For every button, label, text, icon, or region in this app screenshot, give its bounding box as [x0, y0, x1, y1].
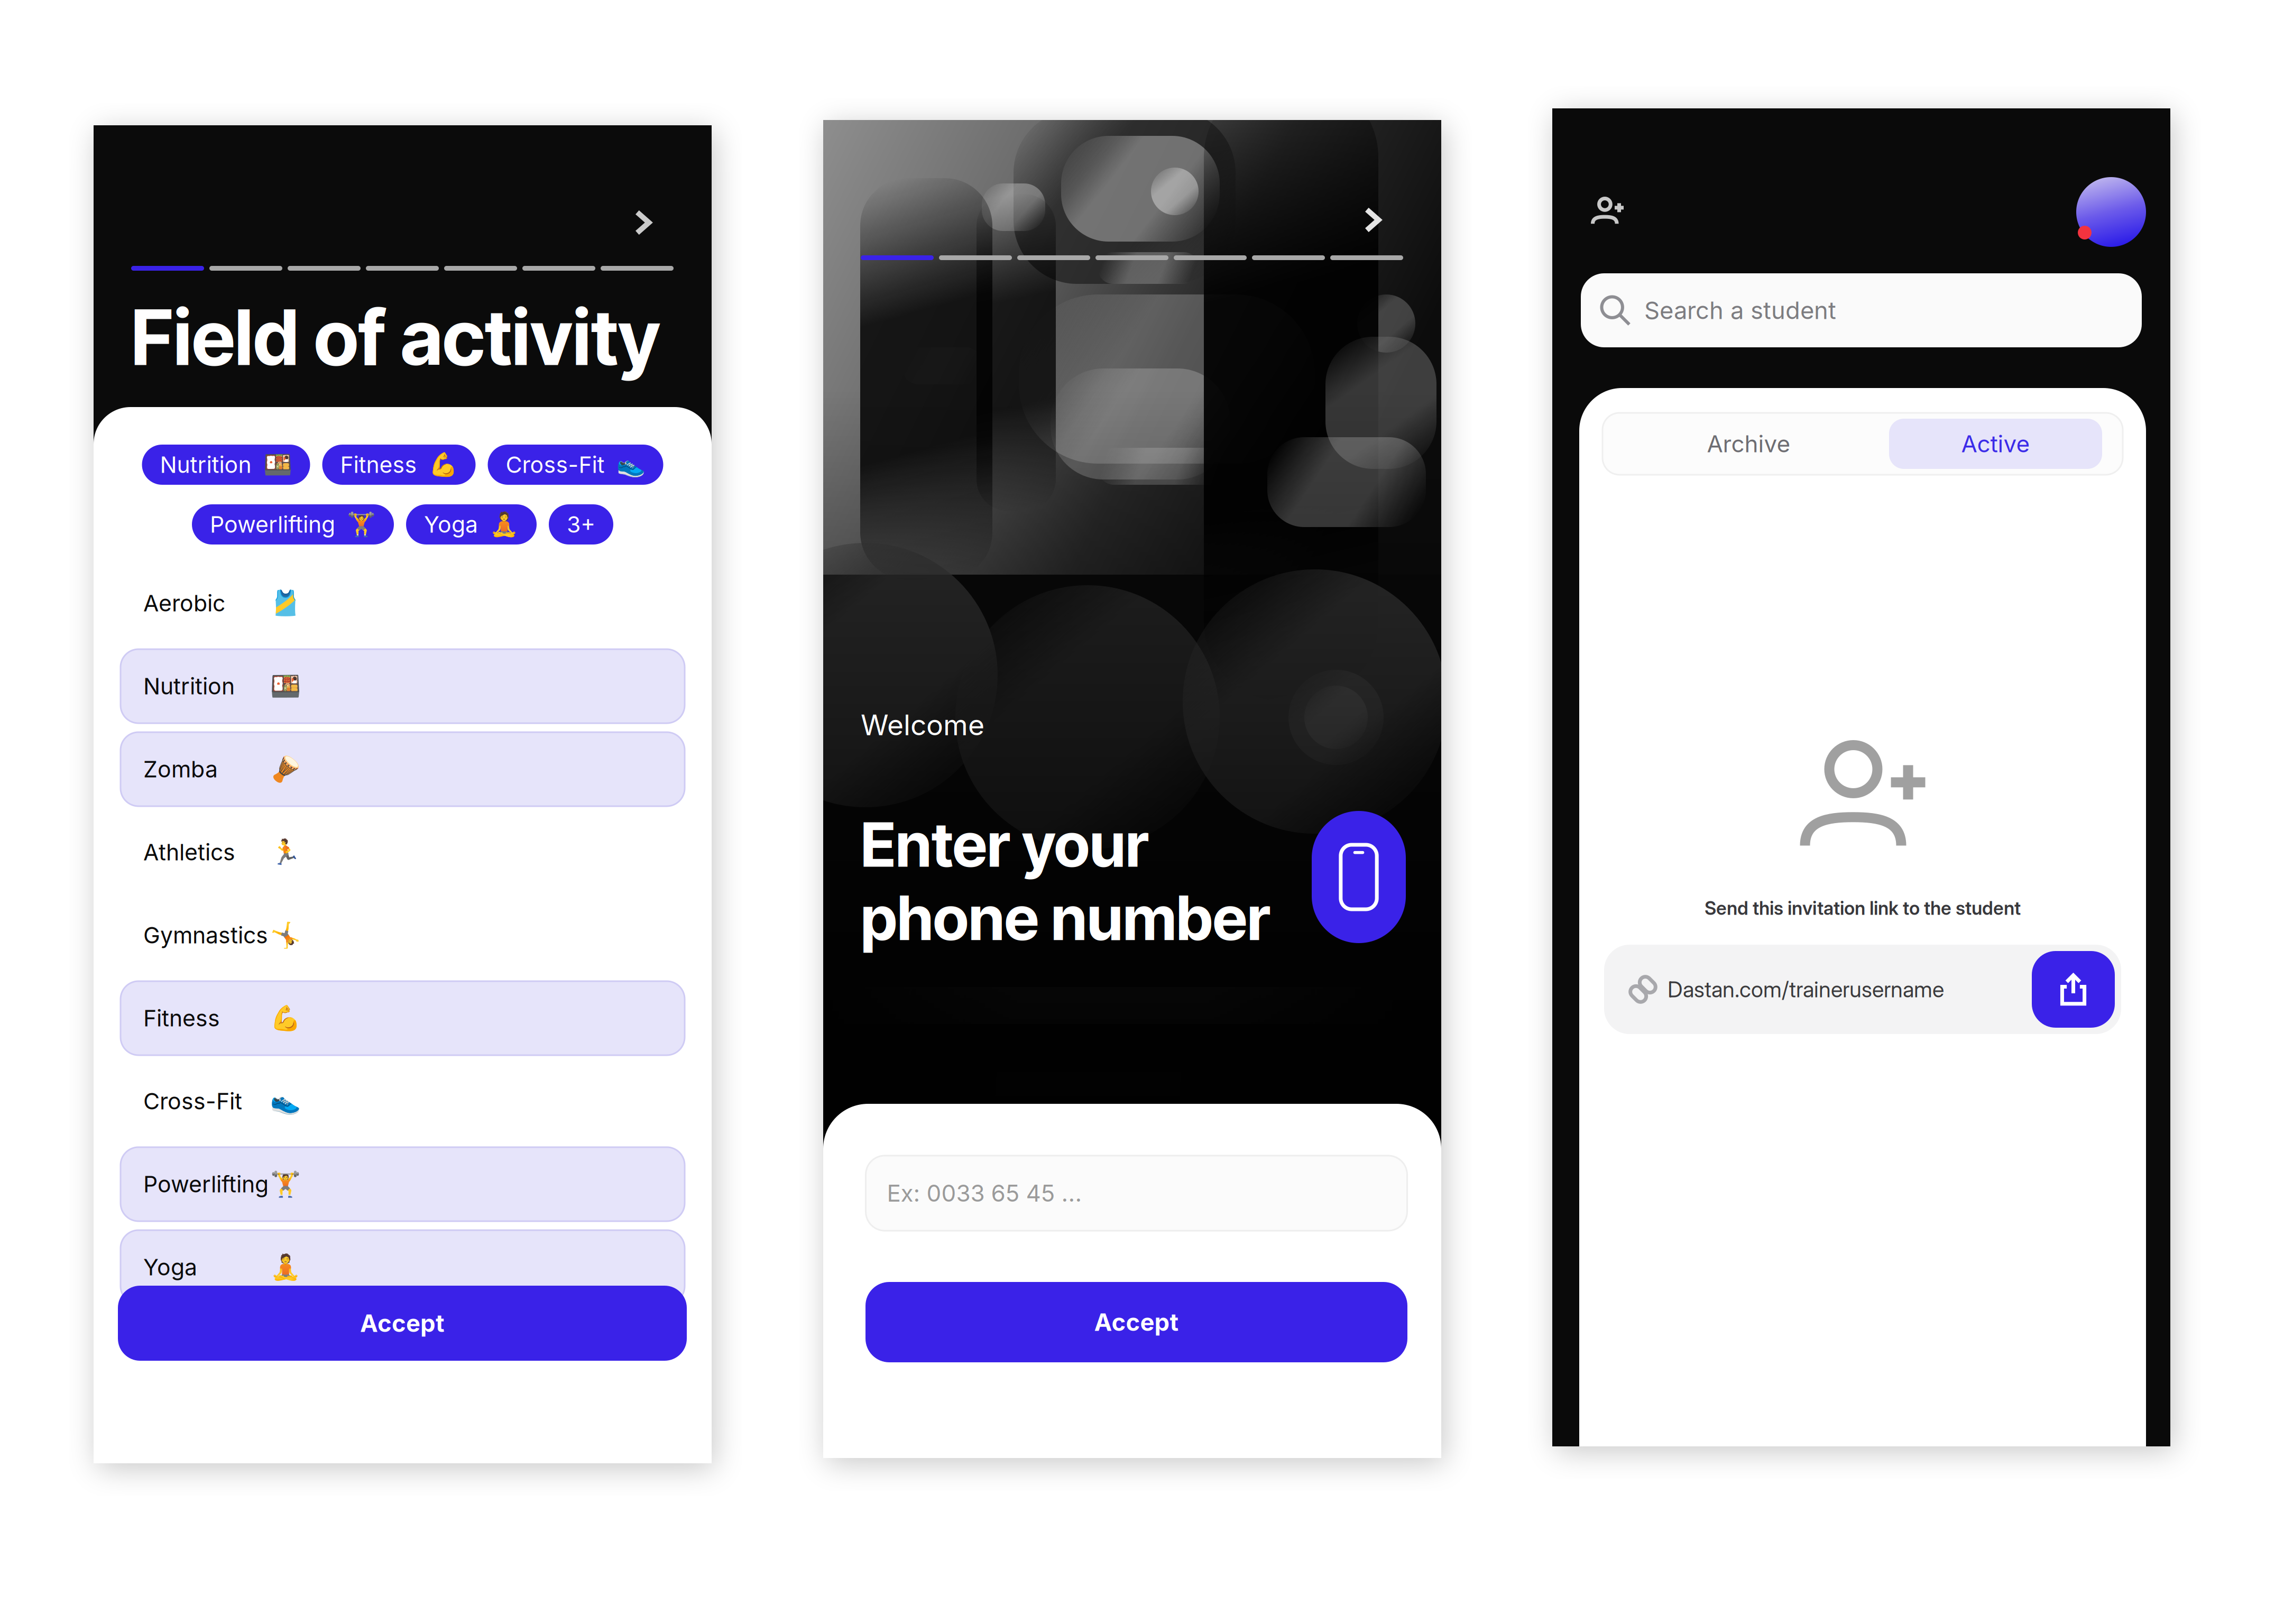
button[interactable]: Active — [1889, 419, 2102, 469]
staticText: Welcome — [861, 708, 984, 742]
staticText: Fitness — [340, 451, 417, 478]
staticText: Powerlifting — [143, 1171, 269, 1198]
staticText: Accept — [1094, 1308, 1179, 1337]
button[interactable]: Accept — [865, 1282, 1407, 1362]
staticText: 🧘 — [490, 511, 519, 538]
button[interactable]: 3+ — [549, 504, 613, 545]
staticText: Powerlifting — [210, 511, 335, 538]
button[interactable]: Powerlifting — [192, 504, 394, 545]
staticText: 👟 — [616, 451, 645, 478]
button[interactable]: Nutrition — [121, 649, 685, 723]
staticText: 🍱 — [263, 451, 292, 478]
button[interactable]: Profile — [2076, 177, 2146, 247]
staticText: Nutrition — [143, 673, 235, 700]
button[interactable]: Next — [621, 201, 664, 244]
staticText: Gymnastics — [143, 922, 268, 949]
button[interactable]: Gymnastics — [121, 898, 685, 972]
staticText: Enter your phone number — [861, 808, 1270, 955]
button[interactable]: Fitness — [322, 445, 476, 485]
staticText: Send this invitation link to the student — [1705, 897, 2021, 919]
button[interactable]: Phone — [1312, 811, 1406, 943]
button[interactable]: Cross-Fit — [121, 1064, 685, 1138]
button[interactable]: Yoga — [406, 504, 537, 545]
staticText: 🍱 — [270, 672, 301, 701]
staticText: Search a student — [1644, 296, 1836, 325]
button[interactable]: Accept — [118, 1286, 687, 1361]
button[interactable]: Search a student — [1581, 273, 2142, 347]
button[interactable]: Nutrition — [142, 445, 310, 485]
button[interactable]: Archive — [1608, 419, 1889, 469]
staticText: Athletics — [143, 839, 235, 866]
button[interactable]: Fitness — [121, 981, 685, 1055]
button[interactable]: Add student — [1580, 186, 1634, 236]
staticText: 🏃 — [270, 838, 301, 867]
staticText: Nutrition — [160, 451, 251, 478]
button[interactable]: Aerobic — [121, 566, 685, 640]
staticText: 🏋 — [270, 1170, 301, 1199]
staticText: Cross-Fit — [143, 1088, 242, 1115]
button[interactable]: Next — [1351, 199, 1393, 241]
staticText: Cross-Fit — [506, 451, 605, 478]
staticText: 🧘 — [270, 1253, 301, 1282]
staticText: Accept — [360, 1309, 445, 1338]
staticText: Fitness — [143, 1005, 220, 1032]
staticText: 💪 — [429, 451, 458, 478]
button[interactable]: Zomba — [121, 732, 685, 806]
button[interactable]: Athletics — [121, 815, 685, 889]
staticText: Ex: 0033 65 45 ... — [887, 1179, 1082, 1207]
button[interactable]: Share — [2032, 951, 2115, 1028]
staticText: 🏋 — [347, 511, 376, 538]
staticText: Yoga — [424, 511, 478, 538]
button[interactable]: Yoga — [121, 1230, 685, 1304]
staticText: 3+ — [567, 511, 595, 538]
staticText: Field of activity — [131, 291, 660, 383]
staticText: 👟 — [270, 1087, 301, 1116]
button[interactable]: Powerlifting — [121, 1147, 685, 1221]
staticText: Aerobic — [143, 590, 225, 617]
staticText: Active — [1961, 430, 2030, 458]
staticText: 💪 — [270, 1004, 301, 1033]
staticText: Archive — [1707, 430, 1790, 458]
staticText: Yoga — [143, 1254, 197, 1281]
staticText: Zomba — [143, 756, 218, 783]
staticText: 🤸 — [270, 921, 301, 950]
staticText: Dastan.com/trainerusername — [1668, 976, 1944, 1003]
button[interactable]: Cross-Fit — [488, 445, 663, 485]
staticText: 🪘 — [270, 755, 301, 784]
staticText: 🎽 — [270, 589, 301, 618]
